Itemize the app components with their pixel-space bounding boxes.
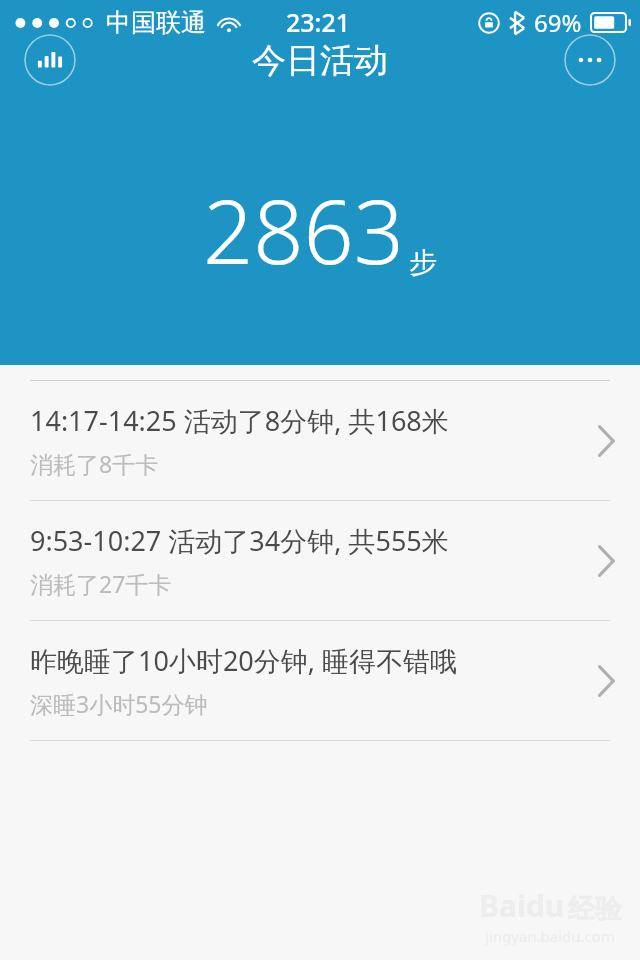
button[interactable]: 更多 — [564, 34, 616, 86]
button[interactable]: 9:53-10:27 活动了34分钟, 共555米 — [0, 501, 640, 620]
staticText: 今日活动 — [252, 39, 388, 82]
staticText: 昨晚睡了10小时20分钟, 睡得不错哦 — [30, 642, 458, 679]
staticText: 69% — [534, 6, 582, 39]
button[interactable]: 昨晚睡了10小时20分钟, 睡得不错哦 — [0, 621, 640, 740]
button[interactable]: 14:17-14:25 活动了8分钟, 共168米 — [0, 381, 640, 500]
staticText: 经验 — [568, 892, 622, 926]
staticText: 深睡3小时55分钟 — [30, 688, 208, 719]
staticText: 23:21 — [286, 5, 351, 39]
staticText: 2863 — [203, 170, 404, 290]
staticText: 14:17-14:25 活动了8分钟, 共168米 — [30, 402, 449, 439]
staticText: Baidu — [479, 885, 565, 926]
button[interactable]: 统计 — [24, 34, 76, 86]
staticText: 消耗了8千卡 — [30, 448, 159, 479]
staticText: 步 — [409, 245, 437, 280]
staticText: 中国联通 — [106, 7, 206, 38]
staticText: 消耗了27千卡 — [30, 568, 172, 599]
staticText: jingyan.baidu.com — [485, 926, 615, 946]
staticText: 9:53-10:27 活动了34分钟, 共555米 — [30, 522, 449, 559]
